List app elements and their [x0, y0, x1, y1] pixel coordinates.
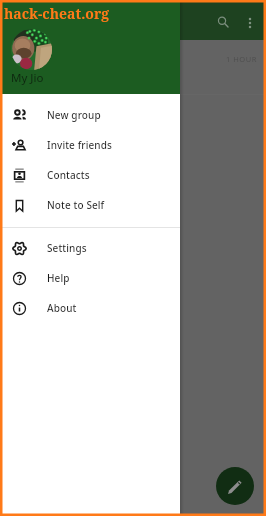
staticText: Settings — [47, 241, 87, 255]
staticText: About — [47, 301, 77, 315]
button[interactable]: About — [0, 293, 180, 323]
staticText: hack-cheat.org — [4, 4, 110, 23]
staticText: Help — [47, 271, 70, 285]
staticText: Note to Self — [47, 198, 105, 212]
staticText: My Jio — [11, 70, 44, 86]
button[interactable]: Contacts — [0, 160, 180, 190]
button[interactable]: Help — [0, 263, 180, 293]
button[interactable]: New group — [0, 100, 180, 130]
staticText: New group — [47, 108, 101, 122]
staticText: Invite friends — [47, 138, 112, 152]
button[interactable]: Note to Self — [0, 190, 180, 220]
staticText: 1 HOUR — [226, 54, 257, 64]
button[interactable]: New chat — [216, 467, 254, 505]
staticText: Contacts — [47, 168, 90, 182]
button[interactable]: Invite friends — [0, 130, 180, 160]
button[interactable]: Search — [211, 10, 235, 34]
button[interactable]: More options — [238, 11, 262, 35]
button[interactable]: Settings — [0, 233, 180, 263]
